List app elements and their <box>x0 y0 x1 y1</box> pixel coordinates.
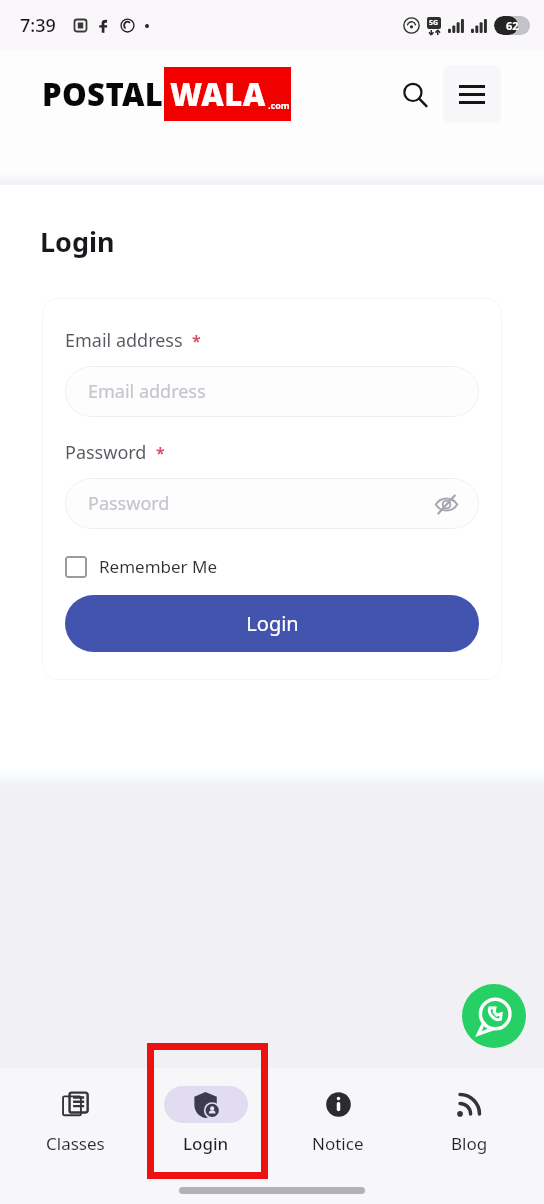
staticText: WALA <box>170 73 266 115</box>
button[interactable]: Password <box>65 478 479 529</box>
staticText: 7:39 <box>20 13 56 38</box>
button[interactable]: Show password <box>431 489 461 519</box>
button[interactable]: Menu <box>443 65 501 123</box>
staticText: Password <box>88 491 170 516</box>
staticText: .com <box>268 99 290 111</box>
staticText: Email address <box>88 379 206 404</box>
staticText: * <box>156 442 165 464</box>
button[interactable]: Search <box>389 69 441 121</box>
staticText: 5G <box>429 18 439 28</box>
staticText: Notice <box>312 1132 364 1155</box>
staticText: Remember Me <box>99 555 218 578</box>
button[interactable]: POSTAL <box>42 67 291 121</box>
staticText: Blog <box>451 1132 488 1155</box>
button[interactable]: Remember Me <box>65 555 218 578</box>
button[interactable]: Login <box>150 1083 262 1158</box>
staticText: Login <box>183 1132 229 1155</box>
staticText: Classes <box>46 1132 105 1155</box>
button[interactable]: Notice <box>282 1083 394 1158</box>
button[interactable]: Email address <box>65 366 479 417</box>
staticText: Password <box>65 440 147 465</box>
button[interactable]: Blog <box>413 1083 525 1158</box>
button[interactable]: Classes <box>19 1083 131 1158</box>
staticText: POSTAL <box>42 73 164 115</box>
staticText: Login <box>40 223 115 260</box>
button[interactable]: Chat on WhatsApp <box>462 984 526 1048</box>
staticText: 62 <box>506 18 519 33</box>
button[interactable]: Login <box>65 595 479 652</box>
staticText: Email address <box>65 328 183 353</box>
staticText: Login <box>246 610 299 637</box>
staticText: * <box>192 330 201 352</box>
